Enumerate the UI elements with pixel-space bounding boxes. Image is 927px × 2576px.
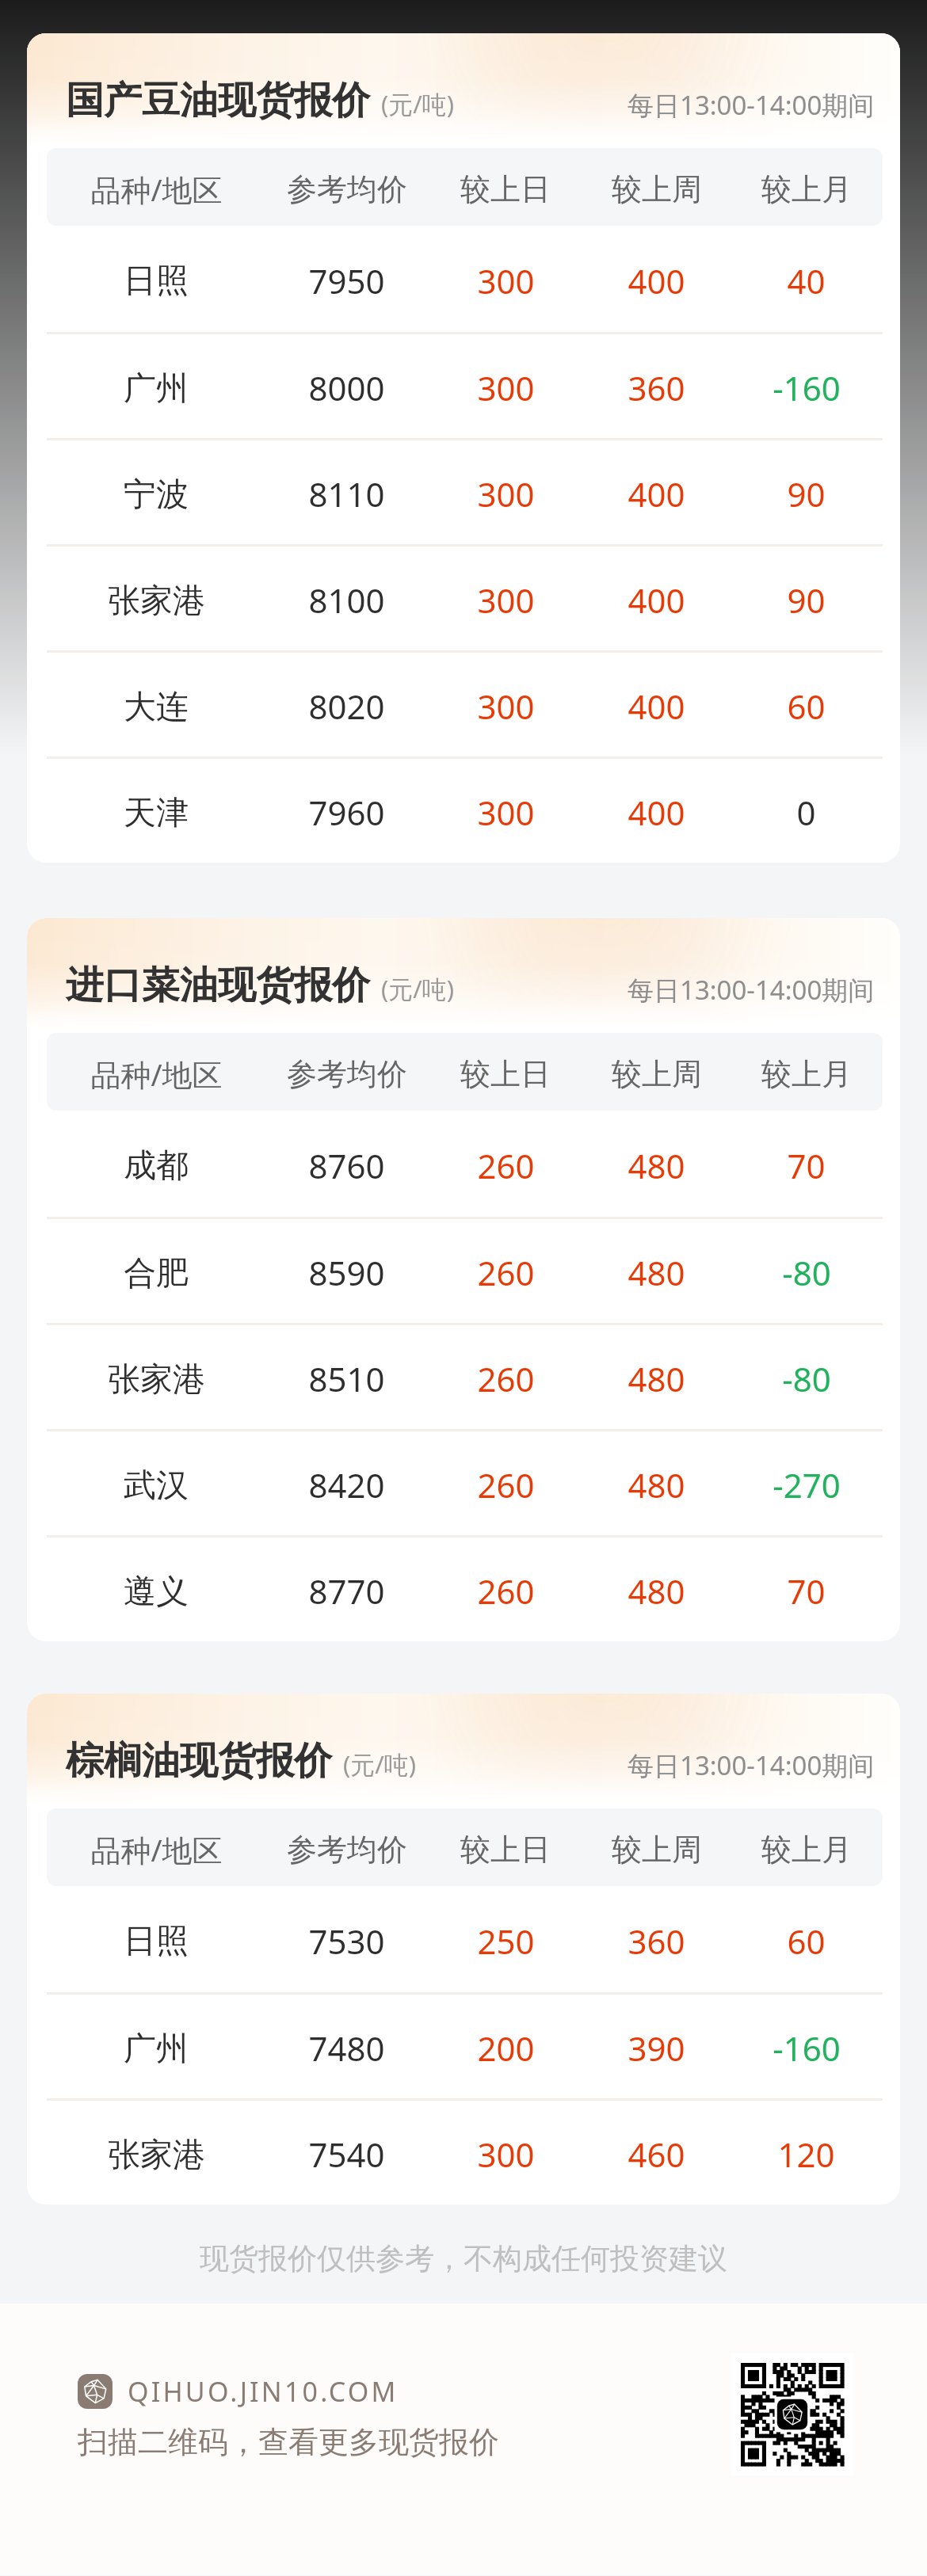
button[interactable]: 棕榈油现货报价 bbox=[27, 1694, 900, 2204]
staticText: 460 bbox=[628, 2132, 685, 2177]
button[interactable]: 扫描二维码，查看更多现货报价 bbox=[78, 2423, 499, 2461]
staticText: 每日13:00-14:00期间 bbox=[628, 972, 875, 1008]
staticText: 每日13:00-14:00期间 bbox=[628, 87, 875, 123]
staticText: 张家港 bbox=[108, 1359, 205, 1400]
staticText: 300 bbox=[477, 577, 535, 623]
staticText: 400 bbox=[628, 471, 685, 516]
button[interactable]: 国产豆油现货报价 bbox=[27, 33, 900, 863]
button[interactable]: 日照 bbox=[27, 1886, 900, 1992]
staticText: 国产豆油现货报价 bbox=[66, 77, 370, 124]
staticText: (元/吨) bbox=[381, 87, 455, 120]
button[interactable]: 宁波 bbox=[27, 440, 900, 544]
staticText: -160 bbox=[772, 365, 841, 410]
staticText: 260 bbox=[477, 1568, 535, 1614]
staticText: 8590 bbox=[308, 1250, 385, 1295]
staticText: 8110 bbox=[308, 471, 385, 516]
staticText: 480 bbox=[628, 1250, 685, 1295]
other: Logo bbox=[78, 2374, 113, 2409]
staticText: 300 bbox=[477, 365, 535, 410]
staticText: 480 bbox=[628, 1462, 685, 1507]
staticText: 较上日 bbox=[460, 1831, 551, 1869]
staticText: 8100 bbox=[308, 577, 385, 623]
staticText: 8510 bbox=[308, 1356, 385, 1401]
staticText: -80 bbox=[782, 1356, 831, 1401]
staticText: 60 bbox=[787, 1919, 826, 1964]
staticText: 较上日 bbox=[460, 170, 551, 208]
staticText: 较上日 bbox=[460, 1055, 551, 1093]
staticText: 较上周 bbox=[612, 170, 702, 208]
staticText: 90 bbox=[787, 577, 826, 623]
button[interactable]: 张家港 bbox=[27, 1325, 900, 1429]
staticText: 参考均价 bbox=[287, 1831, 407, 1869]
staticText: 7960 bbox=[308, 790, 385, 835]
staticText: 200 bbox=[477, 2025, 535, 2071]
staticText: 较上周 bbox=[612, 1831, 702, 1869]
staticText: 每日13:00-14:00期间 bbox=[628, 1747, 875, 1783]
staticText: 70 bbox=[787, 1143, 826, 1188]
button[interactable]: 张家港 bbox=[27, 547, 900, 650]
staticText: 360 bbox=[628, 1919, 685, 1964]
staticText: 260 bbox=[477, 1143, 535, 1188]
staticText: 8760 bbox=[308, 1143, 385, 1188]
staticText: 260 bbox=[477, 1356, 535, 1401]
staticText: 天津 bbox=[124, 793, 189, 834]
button[interactable]: 日照 bbox=[27, 226, 900, 332]
button[interactable]: Logo bbox=[78, 2373, 399, 2410]
staticText: 张家港 bbox=[108, 581, 205, 622]
button[interactable]: 大连 bbox=[27, 653, 900, 756]
button[interactable]: 合肥 bbox=[27, 1219, 900, 1323]
button[interactable]: 成都 bbox=[27, 1111, 900, 1217]
other: QR code bbox=[731, 2353, 853, 2475]
staticText: 300 bbox=[477, 471, 535, 516]
staticText: 40 bbox=[787, 258, 826, 303]
button[interactable]: 武汉 bbox=[27, 1431, 900, 1535]
staticText: 7530 bbox=[308, 1919, 385, 1964]
staticText: 棕榈油现货报价 bbox=[66, 1737, 332, 1785]
staticText: 250 bbox=[477, 1919, 535, 1964]
staticText: 进口菜油现货报价 bbox=[66, 962, 370, 1009]
staticText: 成都 bbox=[124, 1145, 189, 1187]
staticText: 参考均价 bbox=[287, 1055, 407, 1093]
staticText: 390 bbox=[628, 2025, 685, 2071]
button[interactable]: 广州 bbox=[27, 1995, 900, 2098]
staticText: 7480 bbox=[308, 2025, 385, 2071]
staticText: (元/吨) bbox=[381, 972, 455, 1005]
staticText: 8000 bbox=[308, 365, 385, 410]
staticText: QIHUO.JIN10.COM bbox=[128, 2373, 399, 2410]
staticText: 400 bbox=[628, 258, 685, 303]
staticText: 0 bbox=[796, 790, 816, 835]
staticText: -80 bbox=[782, 1250, 831, 1295]
button[interactable]: 天津 bbox=[27, 759, 900, 863]
button[interactable]: 遵义 bbox=[27, 1538, 900, 1641]
staticText: 300 bbox=[477, 258, 535, 303]
staticText: 品种/地区 bbox=[90, 1829, 223, 1870]
staticText: 日照 bbox=[124, 261, 189, 302]
staticText: 8420 bbox=[308, 1462, 385, 1507]
button[interactable]: 广州 bbox=[27, 334, 900, 438]
staticText: 较上月 bbox=[761, 1831, 852, 1869]
staticText: 90 bbox=[787, 471, 826, 516]
staticText: 现货报价仅供参考，不构成任何投资建议 bbox=[200, 2240, 727, 2277]
button[interactable]: 进口菜油现货报价 bbox=[27, 918, 900, 1641]
staticText: 参考均价 bbox=[287, 170, 407, 208]
staticText: 300 bbox=[477, 684, 535, 729]
staticText: 300 bbox=[477, 2132, 535, 2177]
staticText: 7540 bbox=[308, 2132, 385, 2177]
staticText: 武汉 bbox=[124, 1465, 189, 1507]
staticText: 300 bbox=[477, 790, 535, 835]
staticText: (元/吨) bbox=[343, 1747, 417, 1781]
staticText: 品种/地区 bbox=[90, 1054, 223, 1095]
staticText: 张家港 bbox=[108, 2135, 205, 2176]
staticText: 广州 bbox=[124, 368, 189, 410]
staticText: 60 bbox=[787, 684, 826, 729]
staticText: 480 bbox=[628, 1356, 685, 1401]
staticText: 400 bbox=[628, 577, 685, 623]
staticText: 较上月 bbox=[761, 170, 852, 208]
staticText: 8020 bbox=[308, 684, 385, 729]
staticText: 广州 bbox=[124, 2029, 189, 2070]
staticText: 260 bbox=[477, 1250, 535, 1295]
staticText: 400 bbox=[628, 790, 685, 835]
button[interactable]: 张家港 bbox=[27, 2101, 900, 2204]
staticText: 480 bbox=[628, 1568, 685, 1614]
staticText: 360 bbox=[628, 365, 685, 410]
